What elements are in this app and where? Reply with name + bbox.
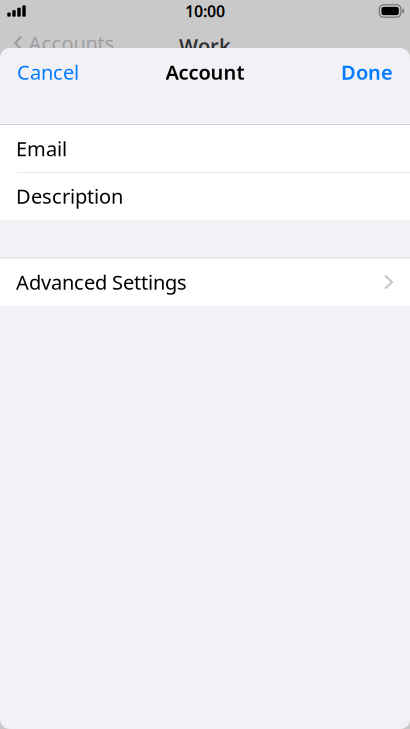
button[interactable]: Done [324, 48, 410, 96]
staticText: Email [16, 135, 67, 162]
staticText: Work [179, 32, 231, 59]
staticText: Account [165, 59, 244, 85]
staticText: Cancel [17, 59, 79, 85]
button[interactable]: Description [0, 173, 410, 220]
button[interactable]: Cancel [0, 48, 96, 96]
staticText: Done [341, 59, 393, 85]
staticText: Accounts [28, 30, 114, 56]
staticText: Description [16, 183, 123, 209]
staticText: 10:00 [185, 0, 225, 22]
button[interactable]: Email [0, 125, 410, 172]
button[interactable]: Advanced Settings [0, 259, 410, 306]
staticText: Advanced Settings [16, 269, 187, 295]
